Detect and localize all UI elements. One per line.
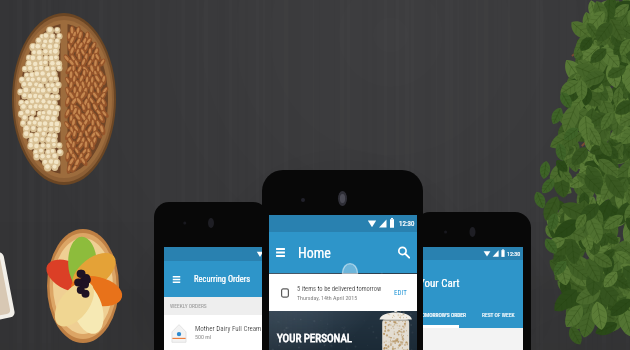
button[interactable]: TOMORROW'S ORDER <box>423 304 473 326</box>
staticText: Thursday, 14th April 2015 <box>297 294 358 301</box>
button[interactable]: Open navigation menu <box>274 246 287 259</box>
button[interactable]: REST OF WEEK <box>473 304 523 326</box>
staticText: REST OF WEEK <box>482 312 515 318</box>
staticText: WEEKLY ORDERS <box>170 303 207 309</box>
staticText: 5 items to be delivered tomorrow <box>297 285 382 293</box>
button[interactable]: Mother Dairy Full Cream Milk <box>168 315 268 350</box>
staticText: TOMORROW'S ORDER <box>419 312 466 318</box>
staticText: YOUR PERSONAL <box>277 332 352 345</box>
staticText: 500 ml <box>195 333 212 340</box>
button[interactable]: Open navigation menu <box>171 274 182 285</box>
button[interactable]: EDIT <box>394 289 407 297</box>
staticText: 12:30 <box>399 220 415 228</box>
staticText: Home <box>298 245 331 261</box>
staticText: 12:30 <box>507 250 521 257</box>
button[interactable]: Search <box>397 246 410 259</box>
staticText: Mother Dairy Full Cream Milk <box>195 325 268 333</box>
staticText: Recurring Orders <box>194 274 251 284</box>
staticText: Your Cart <box>419 277 460 290</box>
button[interactable]: 5 items to be delivered tomorrow <box>269 274 417 311</box>
